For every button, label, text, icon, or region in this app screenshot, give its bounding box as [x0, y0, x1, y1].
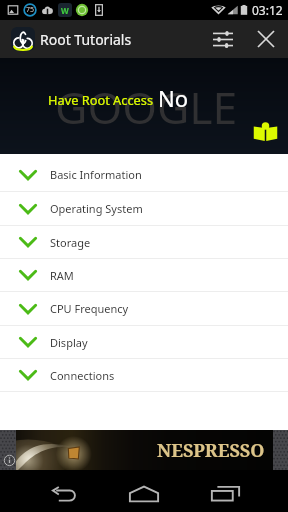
- staticText: RAM: [50, 268, 74, 283]
- button[interactable]: Storage: [0, 226, 288, 258]
- button[interactable]: Settings: [203, 20, 243, 58]
- button[interactable]: Advertisement: [0, 430, 288, 470]
- button[interactable]: Close: [249, 20, 283, 58]
- staticText: Root Tutorials: [40, 30, 132, 49]
- staticText: Display: [50, 335, 88, 350]
- button[interactable]: App icon: [11, 27, 35, 51]
- staticText: 75: [26, 5, 35, 15]
- button[interactable]: Recent apps: [199, 475, 251, 511]
- staticText: GOOGLE: [55, 76, 238, 137]
- staticText: NESPRESSO: [157, 438, 265, 463]
- button[interactable]: Connections: [0, 359, 288, 391]
- button[interactable]: RAM: [0, 259, 288, 291]
- button[interactable]: Operating System: [0, 192, 288, 225]
- button[interactable]: Home: [118, 476, 170, 512]
- staticText: W: [61, 5, 69, 16]
- staticText: Have Root Access: [48, 91, 154, 108]
- staticText: Basic Information: [50, 167, 142, 182]
- staticText: 03:12: [252, 2, 283, 18]
- button[interactable]: CPU Frequency: [0, 292, 288, 325]
- button[interactable]: Back: [38, 476, 90, 512]
- staticText: Storage: [50, 235, 91, 250]
- staticText: Operating System: [50, 201, 143, 216]
- staticText: Connections: [50, 368, 115, 383]
- staticText: No: [158, 83, 189, 113]
- staticText: CPU Frequency: [50, 301, 129, 316]
- button[interactable]: Basic Information: [0, 154, 288, 191]
- button[interactable]: Display: [0, 326, 288, 358]
